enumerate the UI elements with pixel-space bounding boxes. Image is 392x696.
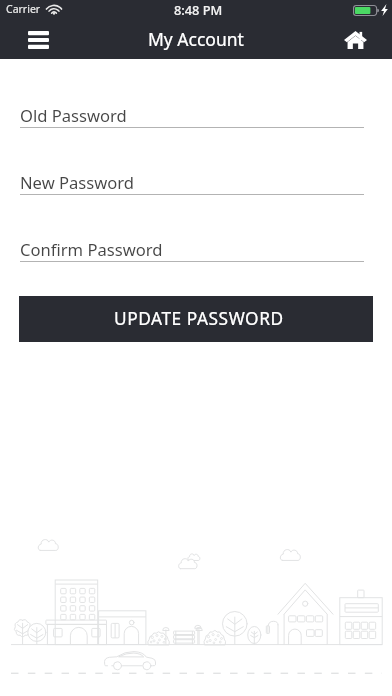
button[interactable]: New Password: [20, 171, 364, 195]
staticText: Confirm Password: [20, 238, 163, 261]
staticText: My Account: [148, 27, 244, 51]
staticText: 8:48 PM: [174, 1, 223, 18]
button[interactable]: UPDATE PASSWORD: [19, 296, 373, 342]
button[interactable]: Confirm Password: [20, 238, 364, 262]
staticText: New Password: [20, 171, 135, 194]
button[interactable]: Old Password: [20, 104, 364, 128]
button[interactable]: Home: [333, 20, 377, 59]
staticText: Old Password: [20, 104, 127, 127]
button[interactable]: Open navigation menu: [16, 20, 60, 59]
staticText: Carrier: [6, 2, 41, 16]
staticText: UPDATE PASSWORD: [114, 307, 284, 331]
